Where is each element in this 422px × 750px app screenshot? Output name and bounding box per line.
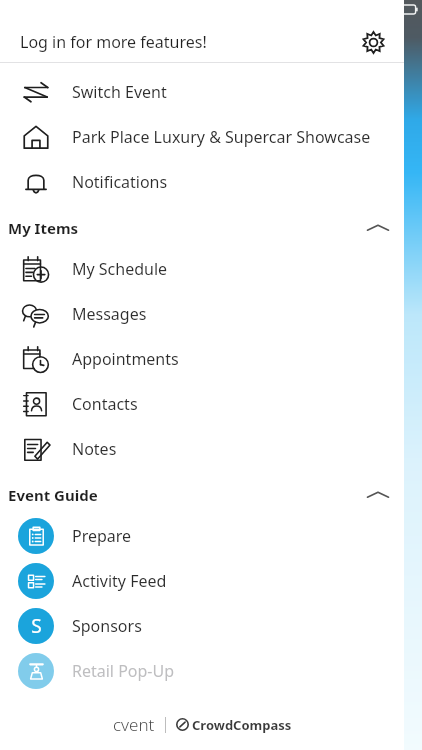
button[interactable]: Retail Pop-Up [0,648,404,693]
staticText: Sponsors [72,615,142,637]
other: Activity Feed [18,563,54,599]
staticText: Contacts [72,393,138,415]
staticText: Messages [72,303,147,325]
staticText: Retail Pop-Up [72,660,175,682]
button[interactable]: Appointments [0,336,404,381]
button[interactable]: My Schedule [0,246,404,291]
button[interactable]: Notes [0,426,404,471]
staticText: S [31,613,42,639]
staticText: Log in for more features! [20,31,207,53]
button[interactable]: Log in for more features! [0,22,404,62]
staticText: My Schedule [72,258,168,280]
staticText: Activity Feed [72,570,167,592]
staticText: Event Guide [8,485,98,505]
staticText: Park Place Luxury & Supercar Showcase [72,126,371,148]
staticText: My Items [8,218,79,238]
button[interactable]: My Items [0,210,404,246]
button[interactable]: Prepare [0,513,404,558]
button[interactable]: Park Place Luxury & Supercar Showcase [0,114,404,159]
button[interactable]: Activity Feed [0,558,404,603]
button[interactable]: Switch Event [0,69,404,114]
staticText: Switch Event [72,81,167,103]
staticText: cvent [113,713,155,736]
button[interactable]: Settings [356,25,390,59]
staticText: Prepare [72,525,132,547]
staticText: Notifications [72,171,168,193]
button[interactable]: Notifications [0,159,404,204]
button[interactable]: Event Guide [0,477,404,513]
button[interactable]: S [0,603,404,648]
staticText: Appointments [72,348,179,370]
button[interactable]: Messages [0,291,404,336]
staticText: Notes [72,438,117,460]
staticText: CrowdCompass [192,716,292,734]
other: Retail Pop-Up [18,653,54,689]
button[interactable]: Contacts [0,381,404,426]
other: Prepare [18,518,54,554]
